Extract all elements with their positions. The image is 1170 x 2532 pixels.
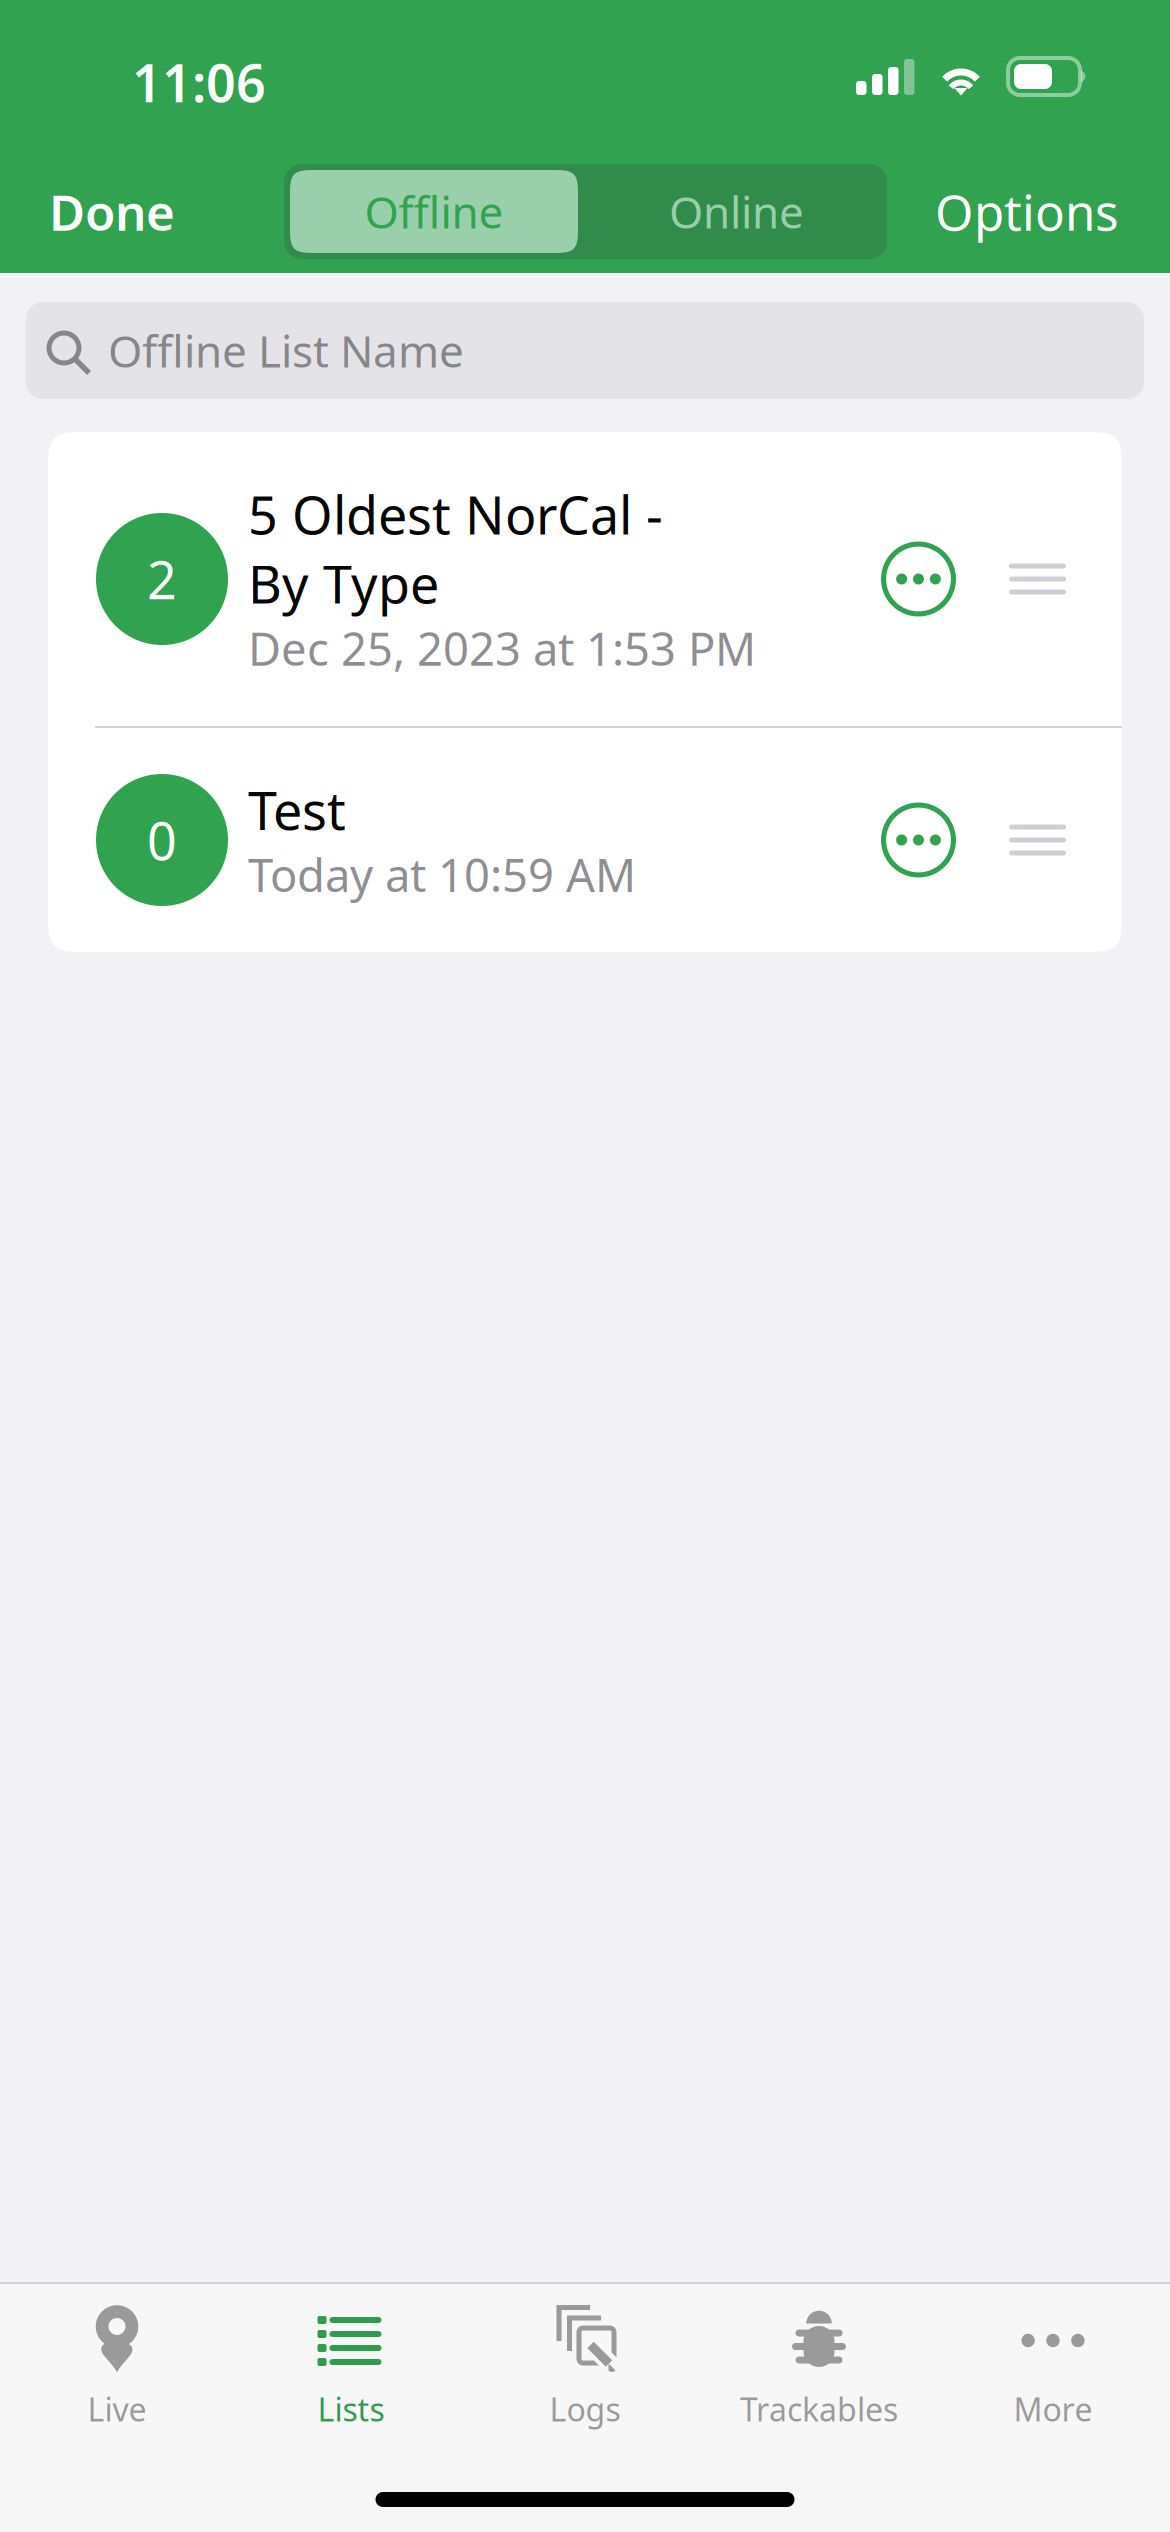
staticText: Test (248, 775, 346, 844)
button[interactable]: Online (586, 170, 887, 253)
button[interactable]: More (936, 2284, 1170, 2429)
staticText: Done (49, 179, 175, 244)
staticText: 11:06 (132, 47, 266, 117)
button[interactable]: Lists (234, 2284, 468, 2429)
staticText: Live (87, 2388, 146, 2430)
button[interactable]: 0 (48, 728, 1122, 952)
staticText: Offline (364, 182, 503, 241)
staticText: Online (669, 182, 804, 241)
staticText: 0 (147, 805, 177, 875)
staticText: Trackables (740, 2388, 898, 2430)
staticText: Offline List Name (108, 321, 464, 380)
button[interactable]: Options (899, 150, 1119, 273)
button[interactable]: Live (0, 2284, 234, 2429)
staticText: Today at 10:59 AM (248, 844, 636, 905)
button[interactable]: Offline (290, 170, 578, 253)
staticText: Dec 25, 2023 at 1:53 PM (248, 618, 756, 678)
button[interactable]: Done (49, 150, 239, 273)
staticText: More (1013, 2388, 1092, 2430)
button[interactable]: 2 (48, 432, 1122, 726)
staticText: Lists (317, 2388, 384, 2430)
staticText: Logs (549, 2388, 620, 2430)
staticText: 5 Oldest NorCal - By Type (248, 480, 663, 618)
button[interactable]: Logs (468, 2284, 702, 2429)
staticText: 2 (147, 544, 177, 614)
staticText: Options (935, 179, 1119, 244)
button[interactable]: Trackables (702, 2284, 936, 2429)
